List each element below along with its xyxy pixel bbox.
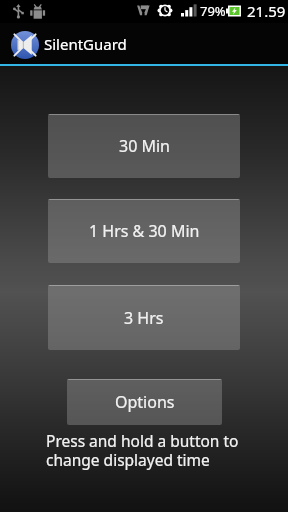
staticText: 30 Min <box>119 135 170 157</box>
button[interactable]: Options <box>67 379 222 425</box>
button[interactable]: 30 Min <box>48 114 240 178</box>
staticText: SilentGuard <box>44 34 127 54</box>
button[interactable]: 3 Hrs <box>48 285 240 350</box>
button[interactable]: 1 Hrs & 30 Min <box>48 199 240 263</box>
staticText: 1 Hrs & 30 Min <box>89 220 200 242</box>
staticText: 21.59 <box>247 1 286 21</box>
staticText: 79% <box>200 2 226 20</box>
staticText: Options <box>115 391 175 413</box>
staticText: 3 Hrs <box>124 307 164 329</box>
staticText: Press and hold a button to change displa… <box>46 430 239 470</box>
